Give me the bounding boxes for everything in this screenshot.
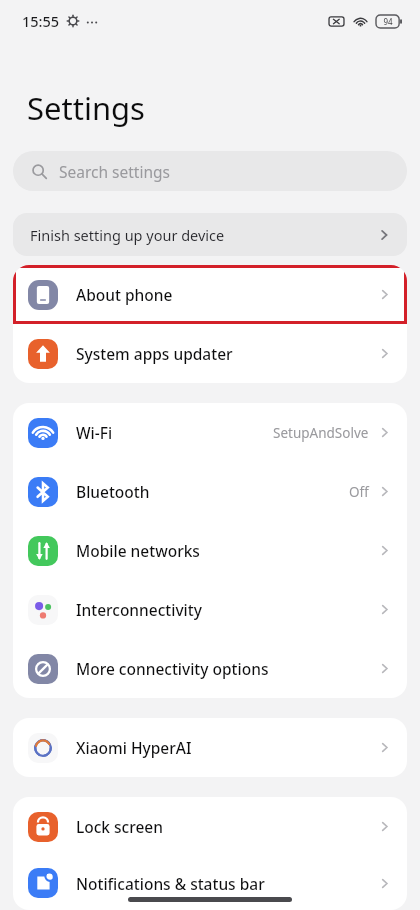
button[interactable]: Mobile networks — [13, 521, 407, 580]
staticText: Xiaomi HyperAI — [76, 737, 192, 758]
button[interactable]: Lock screen — [13, 797, 407, 856]
button[interactable]: Search settings — [13, 151, 407, 191]
button[interactable]: System apps updater — [13, 324, 407, 383]
button[interactable]: Xiaomi HyperAI — [13, 718, 407, 777]
staticText: Mobile networks — [76, 540, 200, 561]
staticText: Bluetooth — [76, 481, 150, 502]
button[interactable]: Wi-Fi — [13, 403, 407, 462]
button[interactable]: About phone — [13, 265, 407, 324]
button[interactable]: Bluetooth — [13, 462, 407, 521]
staticText: Off — [349, 483, 369, 501]
staticText: 94 — [383, 16, 393, 27]
staticText: Interconnectivity — [76, 599, 202, 620]
staticText: 15:55 — [22, 11, 60, 31]
button[interactable]: Notifications & status bar — [13, 856, 407, 910]
button[interactable]: Interconnectivity — [13, 580, 407, 639]
staticText: About phone — [76, 284, 173, 305]
staticText: Settings — [27, 87, 145, 129]
staticText: Search settings — [59, 161, 170, 182]
staticText: Wi-Fi — [76, 422, 113, 443]
staticText: Lock screen — [76, 816, 163, 837]
staticText: SetupAndSolve — [273, 424, 369, 442]
staticText: Notifications & status bar — [76, 873, 265, 894]
staticText: Finish setting up your device — [30, 225, 225, 245]
button[interactable]: Finish setting up your device — [13, 213, 407, 256]
staticText: System apps updater — [76, 343, 233, 364]
button[interactable]: More connectivity options — [13, 639, 407, 698]
staticText: More connectivity options — [76, 658, 269, 679]
